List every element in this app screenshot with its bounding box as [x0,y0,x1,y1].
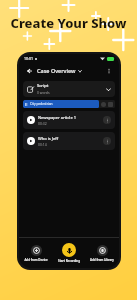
staticText: Add from Library [90,258,114,262]
staticText: 00:14 [38,142,47,147]
button[interactable]: Newspaper article 1 [23,111,115,129]
staticText: Newspaper article 1 [38,115,77,120]
button[interactable]: Adjust [101,102,106,107]
staticText: Start Recording [58,259,80,263]
button[interactable]: Add from Library [86,243,118,264]
staticText: Case Overview [37,67,76,74]
button[interactable]: City pedestrian [23,100,115,108]
button[interactable]: Add from Device [20,243,52,264]
staticText: City pedestrian [30,102,53,106]
button[interactable]: More options [103,65,114,76]
staticText: 0 words [37,90,50,95]
button[interactable]: Back [24,65,35,76]
button[interactable]: Start Recording [53,241,85,265]
staticText: Create Your Show [10,14,127,32]
button[interactable]: Track options [103,137,111,145]
button[interactable]: Case Overview [37,67,82,74]
staticText: Add from Device [24,258,48,262]
staticText: 00:32 [38,121,47,126]
staticText: Who is Jeff [38,136,59,141]
button[interactable]: Who is Jeff [23,132,115,150]
button[interactable]: Track options [103,116,111,124]
staticText: Script [37,83,49,89]
staticText: 10:01 [24,56,33,61]
button[interactable]: Script [23,81,115,97]
